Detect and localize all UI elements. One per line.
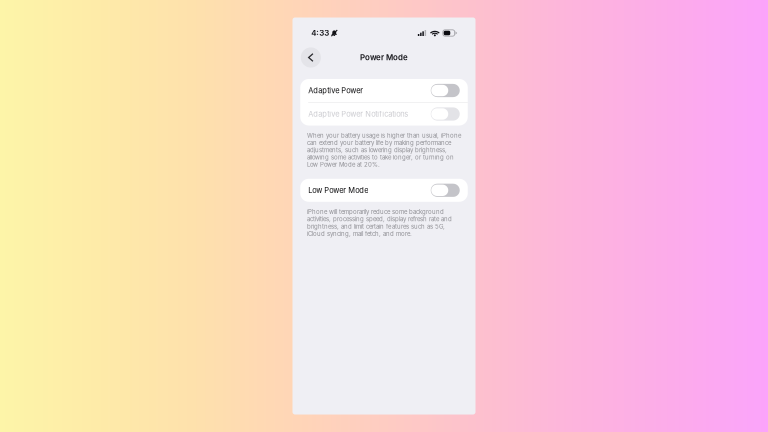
button[interactable]: Back [301, 47, 321, 68]
staticText: 4:33 [311, 28, 329, 38]
button[interactable]: Adaptive Power [300, 79, 468, 102]
staticText: iPhone will temporarily reduce some back… [307, 208, 452, 237]
staticText: Power Mode [360, 53, 408, 62]
button[interactable]: Adaptive Power Notifications [300, 102, 468, 125]
staticText: When your battery usage is higher than u… [307, 132, 461, 168]
button[interactable]: Low Power Mode [300, 179, 468, 202]
staticText: Adaptive Power Notifications [308, 109, 408, 118]
staticText: Low Power Mode [308, 186, 368, 195]
staticText: Adaptive Power [308, 86, 363, 95]
